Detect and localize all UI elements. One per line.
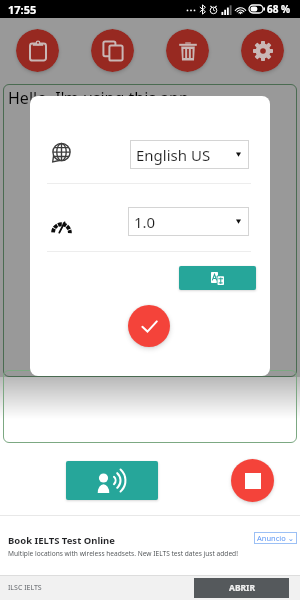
staticText: 1.0	[134, 212, 156, 232]
staticText: ILSC IELTS	[8, 583, 42, 593]
button[interactable]: Settings	[241, 29, 284, 72]
button[interactable]: Delete	[166, 29, 209, 72]
button[interactable]: Anuncio ⌄	[254, 532, 297, 544]
button[interactable]: Confirm	[128, 305, 170, 347]
button[interactable]: Stop	[231, 459, 274, 502]
staticText: Anuncio ⌄	[257, 533, 295, 543]
staticText: Book IELTS Test Online	[8, 534, 115, 547]
button[interactable]: Speak	[66, 461, 158, 500]
button[interactable]: Copy	[91, 29, 134, 72]
button[interactable]: Translate	[179, 266, 256, 290]
staticText: English US	[136, 145, 211, 165]
staticText: ABRIR	[229, 582, 255, 594]
button[interactable]: English US	[130, 140, 249, 169]
button[interactable]: ABRIR	[194, 578, 289, 598]
staticText: Multiple locations with wireless headset…	[8, 549, 238, 558]
staticText: Hello, I'm using this app	[8, 87, 189, 109]
staticText: 68 %	[267, 2, 291, 16]
button[interactable]: 1.0	[128, 207, 249, 236]
staticText: 17:55	[8, 2, 37, 17]
button[interactable]: Paste	[16, 29, 59, 72]
